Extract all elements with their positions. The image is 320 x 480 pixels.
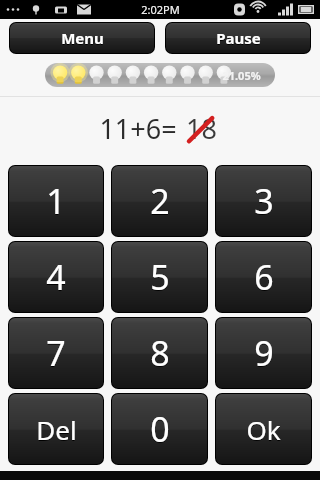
staticText: 9 [254,331,274,377]
staticText: 5 [150,254,170,300]
staticText: Pause [216,29,261,49]
staticText: 7 [46,330,66,376]
button[interactable]: 2 [112,166,207,236]
staticText: 4 [46,254,66,300]
button[interactable]: 7 [9,318,103,388]
staticText: 2:02PM [141,2,180,17]
staticText: 8 [150,330,170,376]
button[interactable]: 6 [216,242,311,312]
staticText: Ok [246,412,281,447]
staticText: 3 [254,179,274,225]
staticText: 0 [150,406,170,452]
staticText: 6 [254,254,274,300]
staticText: 21.05% [222,68,261,83]
staticText: 8 [150,331,170,377]
staticText: Del [36,412,77,447]
staticText: Ok [246,413,281,448]
staticText: 2 [150,179,170,225]
button[interactable]: 1 [9,166,103,236]
button[interactable]: 4 [9,242,103,312]
button[interactable]: 0 [112,394,207,464]
staticText: 7 [46,331,66,377]
staticText: 2 [150,178,170,224]
button[interactable]: Menu [10,23,154,53]
staticText: Menu [61,29,104,49]
staticText: 3 [254,178,274,224]
button[interactable]: 8 [112,318,207,388]
staticText: 4 [46,255,66,301]
staticText: 1 [46,178,66,224]
staticText: 11+6= [99,110,177,147]
staticText: Pause [216,28,261,48]
button[interactable]: Del [9,394,103,464]
button[interactable]: 5 [112,242,207,312]
staticText: Menu [61,28,104,48]
staticText: 5 [150,255,170,301]
button[interactable]: Ok [216,394,311,464]
staticText: 9 [254,330,274,376]
button[interactable]: Pause [166,23,310,53]
staticText: 18 [186,110,217,147]
staticText: 6 [254,255,274,301]
staticText: 0 [150,407,170,453]
button[interactable]: 9 [216,318,311,388]
staticText: 1 [46,179,66,225]
staticText: Del [36,413,77,448]
button[interactable]: 3 [216,166,311,236]
